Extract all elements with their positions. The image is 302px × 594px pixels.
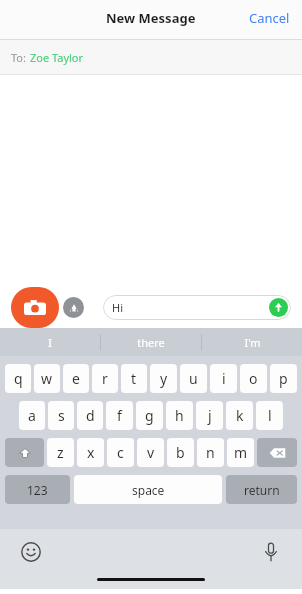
- staticText: t: [131, 369, 137, 388]
- staticText: c: [117, 443, 124, 462]
- button[interactable]: Send: [269, 298, 288, 317]
- button[interactable]: e: [63, 364, 89, 393]
- button[interactable]: m: [227, 438, 254, 467]
- staticText: d: [86, 406, 95, 425]
- staticText: Cancel: [249, 9, 290, 27]
- button[interactable]: v: [137, 438, 164, 467]
- button[interactable]: r: [92, 364, 118, 393]
- staticText: q: [14, 369, 23, 388]
- staticText: u: [189, 369, 198, 388]
- button[interactable]: there: [101, 328, 201, 356]
- staticText: s: [58, 406, 65, 425]
- staticText: k: [236, 406, 244, 425]
- button[interactable]: a: [19, 401, 45, 430]
- staticText: I: [48, 335, 52, 350]
- button[interactable]: Hi: [103, 295, 291, 320]
- button[interactable]: y: [150, 364, 177, 393]
- button[interactable]: I'm: [202, 328, 302, 356]
- staticText: h: [175, 406, 184, 425]
- button[interactable]: To:: [0, 40, 302, 75]
- button[interactable]: b: [167, 438, 194, 467]
- staticText: o: [249, 369, 258, 388]
- staticText: j: [208, 406, 212, 425]
- button[interactable]: j: [196, 401, 223, 430]
- button[interactable]: I: [0, 328, 100, 356]
- staticText: b: [176, 443, 185, 462]
- button[interactable]: p: [270, 364, 297, 393]
- button[interactable]: space: [74, 475, 222, 504]
- button[interactable]: Emoji: [18, 539, 44, 565]
- button[interactable]: t: [121, 364, 147, 393]
- button[interactable]: c: [107, 438, 134, 467]
- staticText: 123: [27, 482, 48, 498]
- staticText: return: [244, 482, 280, 498]
- button[interactable]: x: [77, 438, 104, 467]
- button[interactable]: u: [180, 364, 207, 393]
- staticText: f: [117, 406, 122, 425]
- button[interactable]: Camera: [11, 287, 59, 328]
- button[interactable]: w: [34, 364, 60, 393]
- staticText: there: [137, 335, 165, 350]
- button[interactable]: Dictation: [258, 539, 284, 565]
- staticText: n: [206, 443, 215, 462]
- button[interactable]: return: [226, 475, 297, 504]
- button[interactable]: k: [226, 401, 253, 430]
- staticText: I'm: [244, 335, 261, 350]
- staticText: v: [147, 443, 155, 462]
- button[interactable]: o: [240, 364, 267, 393]
- staticText: e: [72, 369, 80, 388]
- staticText: p: [279, 369, 288, 388]
- button[interactable]: f: [106, 401, 133, 430]
- button[interactable]: z: [47, 438, 74, 467]
- staticText: r: [102, 369, 108, 388]
- button[interactable]: i: [210, 364, 237, 393]
- button[interactable]: h: [166, 401, 193, 430]
- button[interactable]: q: [5, 364, 31, 393]
- staticText: z: [57, 443, 64, 462]
- button[interactable]: g: [136, 401, 163, 430]
- staticText: space: [132, 482, 165, 498]
- staticText: x: [87, 443, 95, 462]
- button[interactable]: Shift: [5, 438, 44, 467]
- staticText: New Message: [106, 9, 196, 27]
- button[interactable]: Cancel: [237, 3, 302, 33]
- staticText: i: [222, 369, 226, 388]
- button[interactable]: n: [197, 438, 224, 467]
- button[interactable]: s: [48, 401, 74, 430]
- staticText: g: [145, 406, 154, 425]
- staticText: l: [268, 406, 272, 425]
- staticText: y: [160, 369, 168, 388]
- staticText: To:: [11, 50, 26, 65]
- button[interactable]: 123: [5, 475, 70, 504]
- staticText: w: [41, 369, 53, 388]
- button[interactable]: Backspace: [257, 438, 297, 467]
- staticText: m: [234, 443, 248, 462]
- button[interactable]: l: [256, 401, 283, 430]
- staticText: Hi: [112, 300, 123, 315]
- staticText: Zoe Taylor: [30, 50, 84, 65]
- staticText: a: [28, 406, 36, 425]
- button[interactable]: Apps: [63, 297, 84, 318]
- button[interactable]: d: [77, 401, 103, 430]
